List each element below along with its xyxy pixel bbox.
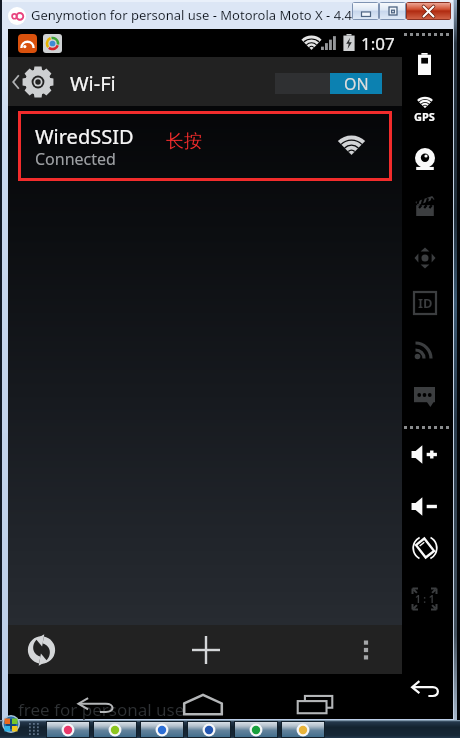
button[interactable]: Add network (176, 625, 236, 674)
button[interactable]: Start (0, 715, 25, 733)
staticText: ON (344, 73, 369, 94)
button[interactable]: volup (399, 435, 450, 473)
button[interactable]: voldown (399, 487, 450, 525)
staticText: free for personal use (18, 698, 185, 721)
button[interactable]: Taskbar item 4 (187, 721, 231, 738)
button[interactable]: rotate (399, 529, 450, 567)
staticText: GPS (414, 109, 435, 124)
button[interactable]: battery (399, 45, 450, 83)
button[interactable]: chat (399, 378, 450, 416)
button[interactable]: Home (165, 680, 241, 714)
button[interactable]: Back (57, 680, 133, 714)
staticText: 1 : 1 (415, 592, 435, 606)
button[interactable]: id (399, 284, 450, 322)
button[interactable]: scale (399, 580, 450, 618)
button[interactable]: clap (399, 187, 450, 225)
staticText: WiredSSID (35, 123, 134, 150)
staticText: 1:07 (361, 32, 395, 55)
button[interactable]: Recents (277, 680, 353, 714)
button[interactable]: Taskbar item 1 (46, 721, 90, 738)
button[interactable]: rss (399, 330, 450, 368)
button[interactable]: Maximize (379, 2, 406, 20)
button[interactable]: More options (342, 625, 390, 674)
button[interactable]: WiredSSID Connected (8, 106, 402, 172)
button[interactable]: Close (406, 2, 451, 20)
button[interactable]: back (399, 669, 450, 707)
button[interactable]: Taskbar item 5 (234, 721, 278, 738)
button[interactable]: Taskbar item 6 (281, 721, 325, 738)
button[interactable]: Taskbar item 3 (140, 721, 184, 738)
staticText: Connected (35, 148, 116, 170)
button[interactable]: Wi-Fi on/off (275, 73, 382, 94)
button[interactable]: Minimize (352, 2, 379, 20)
staticText: 长按 (166, 130, 202, 153)
button[interactable]: Scan (11, 625, 71, 674)
button[interactable]: gps (399, 91, 450, 129)
staticText: Wi-Fi (70, 70, 116, 97)
staticText: ID (418, 294, 433, 312)
button[interactable]: move (399, 239, 450, 277)
button[interactable]: Taskbar item 2 (93, 721, 137, 738)
staticText: Genymotion for personal use - Motorola M… (31, 6, 363, 24)
button[interactable]: Navigate up (8, 57, 66, 106)
button[interactable]: cam (399, 140, 450, 178)
